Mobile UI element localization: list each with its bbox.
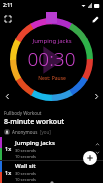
staticText: 2:11: [3, 2, 13, 9]
staticText: 10 seconds: [15, 177, 36, 182]
staticText: Fullbody Workout: [4, 110, 42, 116]
button[interactable]: Previous: [1, 90, 13, 102]
button[interactable]: Edit: [89, 13, 101, 25]
staticText: Anonymous: [12, 129, 38, 135]
button[interactable]: Add exercise: [83, 151, 97, 165]
button[interactable]: Next: [90, 90, 102, 102]
staticText: 1x: [5, 145, 12, 152]
staticText: Next: Pause: [38, 75, 66, 82]
button[interactable]: 1x: [0, 137, 103, 160]
staticText: Jumping jacks: [32, 37, 72, 45]
staticText: Jumping jacks: [15, 139, 55, 147]
staticText: 8-minute workout: [4, 117, 65, 127]
staticText: Wall sit: [15, 162, 36, 170]
staticText: 1x: [5, 169, 12, 176]
button[interactable]: 1x: [0, 161, 103, 183]
staticText: 30 seconds: [15, 148, 36, 153]
staticText: 00:30: [27, 46, 76, 72]
staticText: [you]: [40, 129, 51, 135]
button[interactable]: Fullscreen: [2, 13, 14, 25]
staticText: 30 seconds: [15, 171, 36, 176]
staticText: 10 seconds: [15, 154, 36, 159]
